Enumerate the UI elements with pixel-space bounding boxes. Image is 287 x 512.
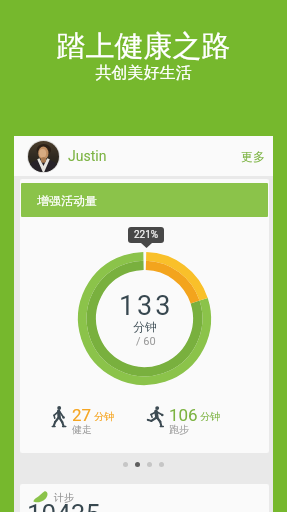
- staticText: 分钟: [133, 319, 157, 334]
- button[interactable]: 增强活动量: [21, 183, 268, 217]
- staticText: 共创美好生活: [0, 63, 287, 83]
- staticText: 106: [169, 405, 198, 425]
- staticText: 221%: [134, 229, 159, 241]
- staticText: 增强活动量: [37, 193, 97, 208]
- staticText: 计步: [54, 491, 74, 504]
- staticText: 分钟: [200, 410, 220, 423]
- staticText: 健走: [72, 423, 92, 436]
- staticText: 133: [119, 290, 174, 322]
- staticText: 10435: [27, 499, 101, 512]
- button[interactable]: [20, 484, 269, 512]
- staticText: 踏上健康之路: [0, 28, 287, 65]
- staticText: 跑步: [169, 423, 189, 436]
- staticText: 27: [72, 405, 92, 425]
- staticText: 更多: [241, 149, 265, 164]
- button[interactable]: Justin: [14, 136, 273, 176]
- staticText: / 60: [136, 335, 156, 348]
- other: Steps: [33, 491, 48, 503]
- staticText: Justin: [68, 148, 107, 164]
- staticText: 分钟: [94, 410, 114, 423]
